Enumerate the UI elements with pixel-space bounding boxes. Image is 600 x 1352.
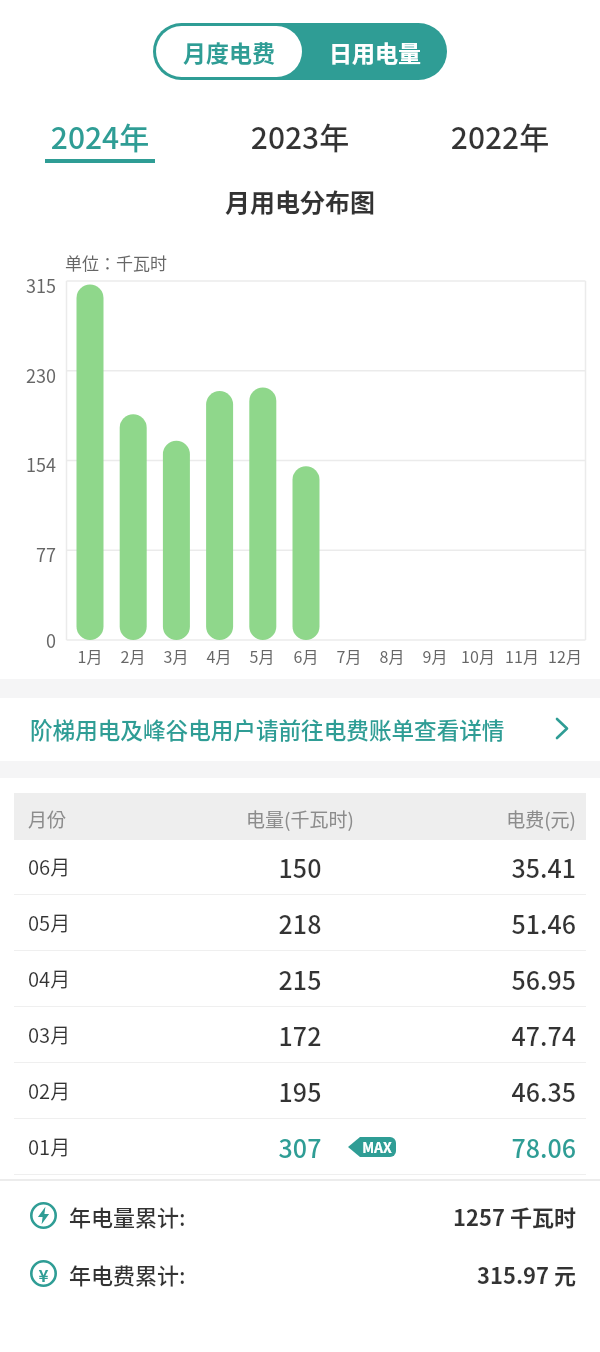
staticText: 315.97 元 xyxy=(300,1258,576,1290)
staticText: 172 xyxy=(150,1017,450,1053)
staticText: 9月 xyxy=(412,644,458,667)
staticText: 10月 xyxy=(455,644,501,667)
staticText: 年电费累计: xyxy=(69,1258,186,1290)
staticText: 56.95 xyxy=(376,961,576,997)
staticText: 月用电分布图 xyxy=(0,183,600,219)
staticText: 1257 千瓦时 xyxy=(300,1200,576,1232)
staticText: 单位：千瓦时 xyxy=(65,250,167,275)
staticText: 195 xyxy=(150,1073,450,1109)
staticText: 154 xyxy=(0,451,56,477)
staticText: 230 xyxy=(0,362,56,388)
staticText: 1月 xyxy=(67,644,113,667)
staticText: 307 xyxy=(150,1129,450,1165)
staticText: 02月 xyxy=(28,1076,71,1105)
staticText: 2月 xyxy=(110,644,156,667)
staticText: 0 xyxy=(0,627,56,653)
staticText: 77 xyxy=(0,541,56,567)
staticText: 6月 xyxy=(283,644,329,667)
staticText: 150 xyxy=(150,849,450,885)
staticText: 3月 xyxy=(153,644,199,667)
staticText: 7月 xyxy=(326,644,372,667)
staticText: 4月 xyxy=(196,644,242,667)
staticText: MAX xyxy=(358,1137,396,1157)
staticText: 78.06 xyxy=(376,1129,576,1165)
staticText: 电量(千瓦时) xyxy=(150,805,450,833)
staticText: 46.35 xyxy=(376,1073,576,1109)
staticText: ¥ xyxy=(30,1262,57,1287)
staticText: 05月 xyxy=(28,908,71,937)
staticText: 47.74 xyxy=(376,1017,576,1053)
staticText: 月份 xyxy=(28,805,67,833)
staticText: 35.41 xyxy=(376,849,576,885)
staticText: 月度电费 xyxy=(183,35,275,68)
staticText: 2022年 xyxy=(400,114,600,157)
staticText: 01月 xyxy=(28,1132,71,1161)
staticText: 11月 xyxy=(499,644,545,667)
staticText: 06月 xyxy=(28,852,71,881)
staticText: 315 xyxy=(0,272,56,298)
staticText: 2023年 xyxy=(200,114,400,157)
staticText: 2024年 xyxy=(0,114,200,157)
staticText: 03月 xyxy=(28,1020,71,1049)
staticText: 5月 xyxy=(239,644,285,667)
staticText: 阶梯用电及峰谷电用户请前往电费账单查看详情 xyxy=(30,713,505,746)
staticText: 215 xyxy=(150,961,450,997)
staticText: 年电量累计: xyxy=(69,1200,186,1232)
staticText: 12月 xyxy=(542,644,588,667)
staticText: 218 xyxy=(150,905,450,941)
staticText: 电费(元) xyxy=(376,805,576,833)
staticText: 51.46 xyxy=(376,905,576,941)
staticText: 8月 xyxy=(369,644,415,667)
staticText: 04月 xyxy=(28,964,71,993)
staticText: 日用电量 xyxy=(329,35,421,68)
